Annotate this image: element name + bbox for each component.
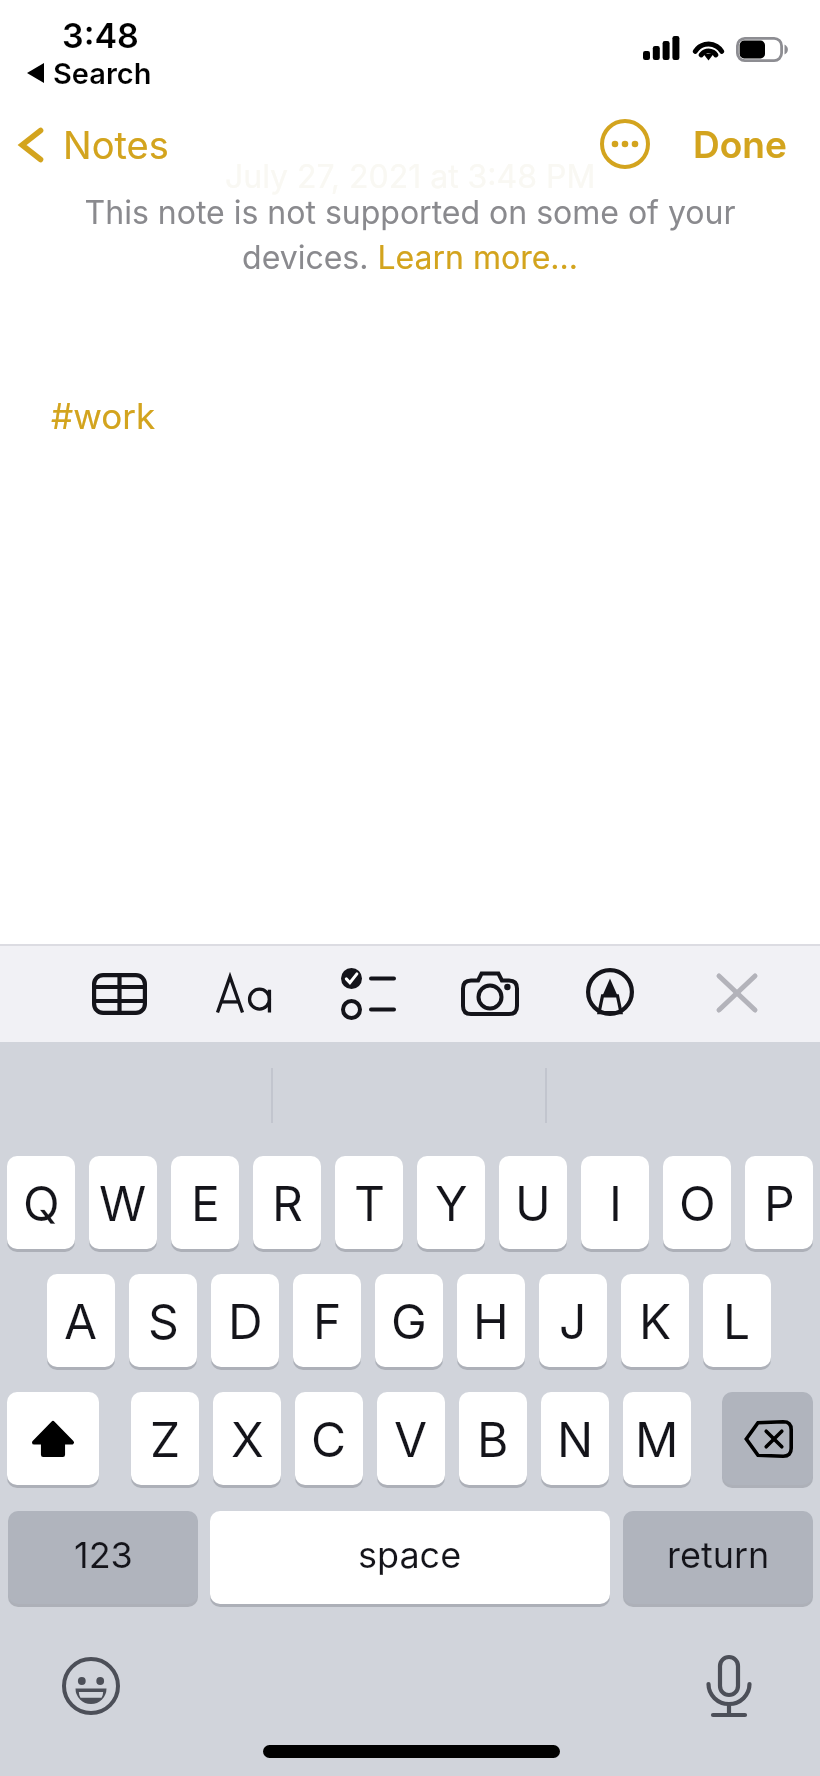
- staticText: return: [667, 1533, 770, 1577]
- button[interactable]: Q: [7, 1156, 75, 1249]
- button[interactable]: Y: [417, 1156, 485, 1249]
- button[interactable]: T: [335, 1156, 403, 1249]
- button[interactable]: N: [541, 1392, 609, 1485]
- button[interactable]: This note is not supported on some of yo…: [62, 193, 758, 277]
- staticText: P: [764, 1174, 795, 1232]
- button[interactable]: 123: [8, 1511, 198, 1604]
- staticText: D: [228, 1292, 263, 1350]
- staticText: R: [272, 1174, 303, 1232]
- staticText: Notes: [63, 122, 169, 168]
- button[interactable]: U: [499, 1156, 567, 1249]
- staticText: #work: [51, 395, 156, 437]
- staticText: Q: [23, 1174, 60, 1232]
- button[interactable]: Emoji: [57, 1652, 125, 1720]
- button[interactable]: Text format: [209, 962, 280, 1026]
- staticText: S: [148, 1292, 179, 1350]
- staticText: X: [231, 1410, 264, 1468]
- staticText: space: [358, 1533, 462, 1577]
- staticText: 123: [74, 1533, 133, 1577]
- staticText: Search: [53, 56, 152, 90]
- staticText: L: [723, 1292, 751, 1350]
- staticText: Done: [693, 122, 787, 167]
- staticText: Y: [435, 1174, 468, 1232]
- button[interactable]: E: [171, 1156, 239, 1249]
- staticText: J: [559, 1292, 587, 1350]
- staticText: N: [557, 1410, 594, 1468]
- button[interactable]: F: [293, 1274, 361, 1367]
- staticText: M: [635, 1410, 679, 1468]
- staticText: B: [477, 1410, 509, 1468]
- button[interactable]: D: [211, 1274, 279, 1367]
- button[interactable]: X: [213, 1392, 281, 1485]
- button[interactable]: More options: [600, 119, 650, 169]
- button[interactable]: M: [623, 1392, 691, 1485]
- staticText: I: [609, 1174, 622, 1232]
- button[interactable]: L: [703, 1274, 771, 1367]
- staticText: G: [391, 1292, 427, 1350]
- button[interactable]: J: [539, 1274, 607, 1367]
- button[interactable]: C: [295, 1392, 363, 1485]
- button[interactable]: Insert table: [84, 964, 154, 1024]
- button[interactable]: space: [210, 1511, 610, 1604]
- button[interactable]: Shift: [7, 1392, 99, 1485]
- staticText: Z: [150, 1410, 181, 1468]
- button[interactable]: Checklist: [334, 962, 400, 1026]
- button[interactable]: S: [129, 1274, 197, 1367]
- staticText: E: [191, 1174, 220, 1232]
- button[interactable]: G: [375, 1274, 443, 1367]
- button[interactable]: Markup: [580, 962, 640, 1022]
- button[interactable]: Dictation: [699, 1650, 759, 1722]
- button[interactable]: I: [581, 1156, 649, 1249]
- button[interactable]: Z: [131, 1392, 199, 1485]
- staticText: July 27, 2021 at 3:48 PM: [225, 157, 596, 196]
- staticText: K: [639, 1292, 672, 1350]
- button[interactable]: B: [459, 1392, 527, 1485]
- button[interactable]: H: [457, 1274, 525, 1367]
- button[interactable]: return: [623, 1511, 813, 1604]
- button[interactable]: Done: [693, 120, 803, 168]
- button[interactable]: O: [663, 1156, 731, 1249]
- staticText: C: [311, 1410, 347, 1468]
- button[interactable]: A: [47, 1274, 115, 1367]
- staticText: A: [64, 1292, 98, 1350]
- button[interactable]: Notes: [15, 116, 169, 174]
- button[interactable]: K: [621, 1274, 689, 1367]
- button[interactable]: W: [89, 1156, 157, 1249]
- staticText: W: [99, 1174, 147, 1232]
- staticText: T: [354, 1174, 385, 1232]
- button[interactable]: Close keyboard: [700, 962, 774, 1024]
- staticText: V: [394, 1410, 428, 1468]
- button[interactable]: Backspace: [722, 1392, 813, 1485]
- staticText: O: [679, 1174, 716, 1232]
- button[interactable]: R: [253, 1156, 321, 1249]
- button[interactable]: P: [745, 1156, 813, 1249]
- button[interactable]: Search: [26, 56, 152, 90]
- button[interactable]: V: [377, 1392, 445, 1485]
- staticText: 3:48: [62, 15, 139, 55]
- staticText: H: [473, 1292, 509, 1350]
- staticText: U: [515, 1174, 551, 1232]
- button[interactable]: #work: [51, 392, 251, 440]
- button[interactable]: Camera: [455, 962, 525, 1024]
- staticText: F: [313, 1292, 342, 1350]
